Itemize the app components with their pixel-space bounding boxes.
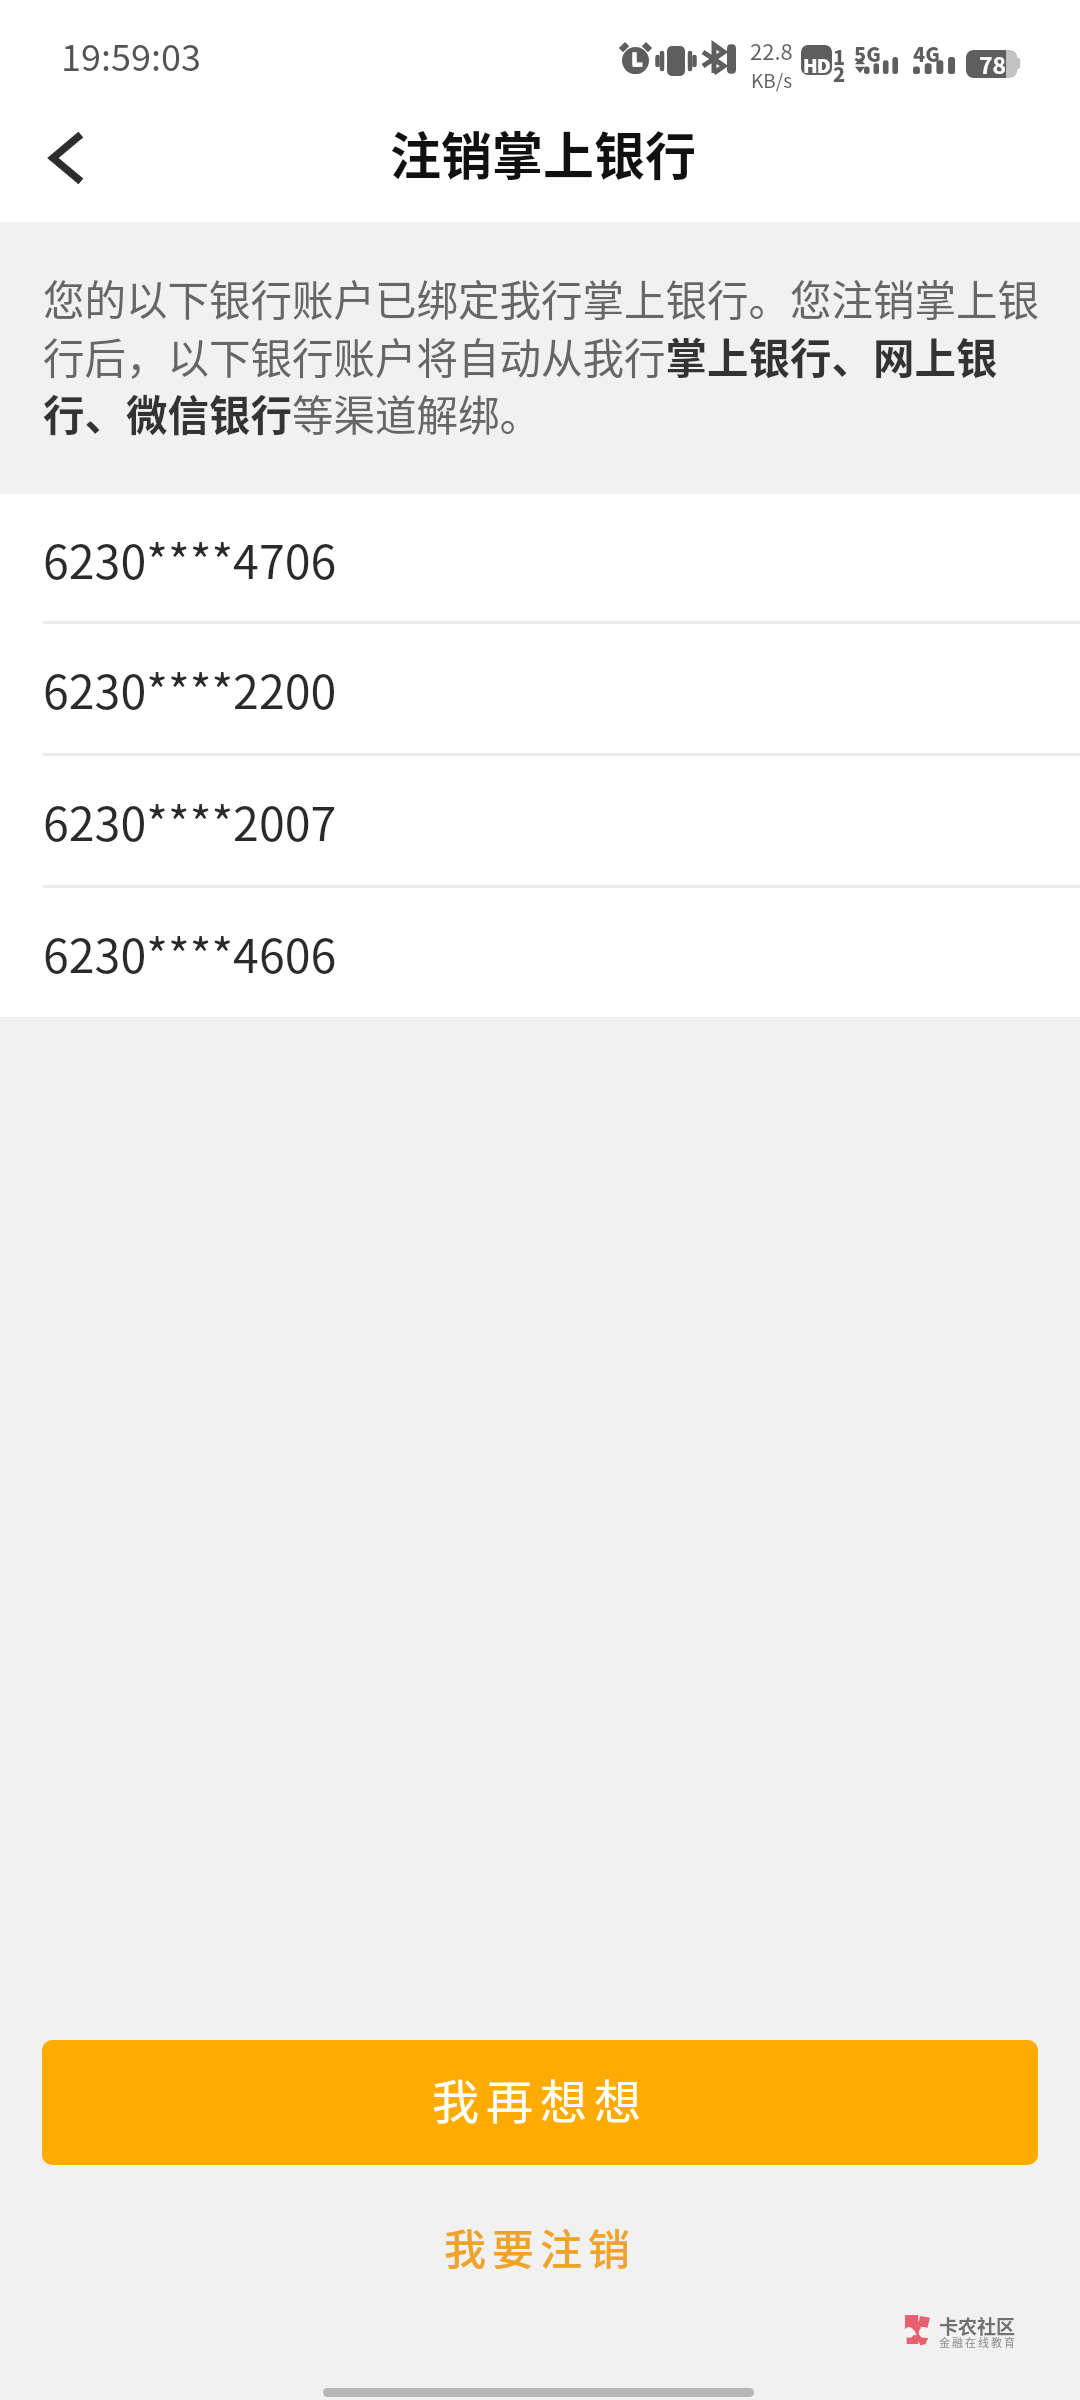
staticText: 22.8 (750, 34, 793, 66)
button[interactable]: 6230****2007 (0, 756, 1080, 885)
staticText: 金融在线教育 (939, 2334, 1017, 2350)
staticText: KB/s (751, 66, 793, 94)
staticText: 5G (854, 39, 881, 68)
staticText: 注销掌上银行 (390, 116, 697, 190)
staticText: 我再想想 (432, 2064, 648, 2132)
button[interactable]: Back (15, 108, 115, 208)
staticText: 4G (913, 39, 940, 68)
staticText: 6230****4606 (43, 919, 337, 986)
staticText: 19:59:03 (61, 29, 201, 81)
staticText: 您的以下银行账户已绑定我行掌上银行。您注销掌上银行后，以下银行账户将自动从我行掌… (43, 268, 1043, 443)
staticText: 2 (833, 59, 846, 88)
button[interactable]: 我再想想 (42, 2040, 1038, 2165)
staticText: 1 (833, 42, 846, 71)
staticText: 78 (979, 47, 1007, 80)
staticText: 6230****2007 (43, 787, 337, 854)
staticText: 6230****4706 (43, 525, 337, 592)
button[interactable]: 6230****4706 (0, 494, 1080, 623)
button[interactable]: 6230****4606 (0, 888, 1080, 1017)
staticText: 6230****2200 (43, 655, 337, 722)
staticText: 卡农社区 (939, 2312, 1016, 2340)
button[interactable]: 6230****2200 (0, 624, 1080, 753)
button[interactable]: 我要注销 (390, 2201, 690, 2291)
staticText: 我要注销 (444, 2216, 637, 2277)
staticText: HD (803, 51, 830, 79)
